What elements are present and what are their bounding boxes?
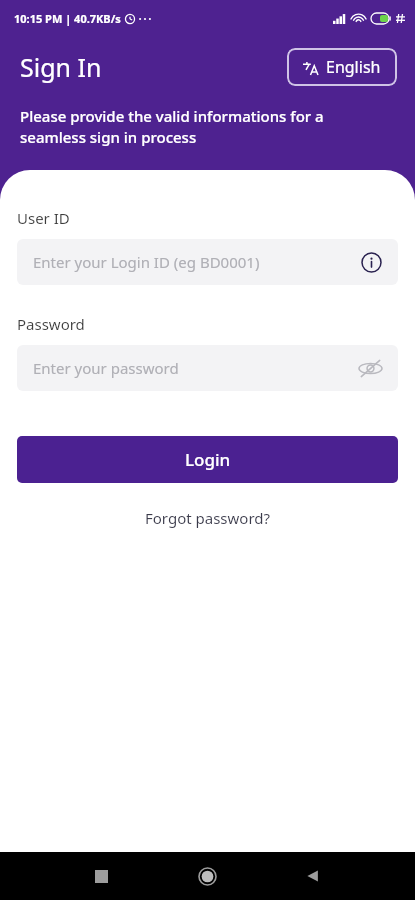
button[interactable]: Enter your Login ID (eg BD0001) [17,239,398,285]
staticText: 10:15 PM | 40.7KB/s [14,11,121,26]
staticText: Please provide the valid informations fo… [20,106,324,148]
other: Show password [359,357,382,380]
button[interactable]: Translate [287,48,397,86]
button[interactable]: Enter your password [17,345,398,391]
button[interactable]: Forgot password? [135,503,281,533]
staticText: Sign In [20,50,102,84]
staticText: Enter your password [33,358,179,378]
staticText: Login [185,448,231,471]
staticText: Password [17,314,85,334]
staticText: User ID [17,208,70,228]
button[interactable]: Login [17,436,398,483]
staticText: Enter your Login ID (eg BD0001) [33,252,260,272]
other: Translate [303,60,318,75]
button[interactable]: Recents [79,854,123,898]
other: Info [361,252,382,273]
staticText: English [326,56,381,78]
button[interactable]: Home [185,854,229,898]
button[interactable]: Back [291,854,335,898]
